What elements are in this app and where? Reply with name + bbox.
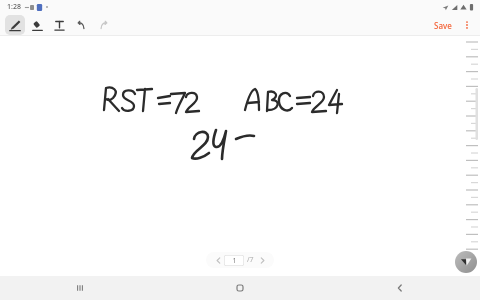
button[interactable]: Previous page [206,252,274,268]
button[interactable]: Next page [256,254,268,266]
button[interactable]: Pen [5,15,25,35]
button[interactable]: Back [320,276,480,300]
button[interactable]: Redo [93,15,113,35]
button[interactable]: Pen settings [455,251,477,273]
button[interactable]: Previous page [212,254,224,266]
button[interactable]: Eraser [27,15,47,35]
staticText: /7 [247,255,254,265]
button[interactable]: Text [49,15,69,35]
staticText: 1 [232,256,237,266]
button[interactable]: Recents [0,276,160,300]
staticText: Save [434,20,452,31]
button[interactable]: More options [458,16,476,34]
button[interactable]: Home [160,276,320,300]
button[interactable]: Save [430,18,456,33]
button[interactable]: Undo [71,15,91,35]
staticText: 1:28 [7,2,21,12]
